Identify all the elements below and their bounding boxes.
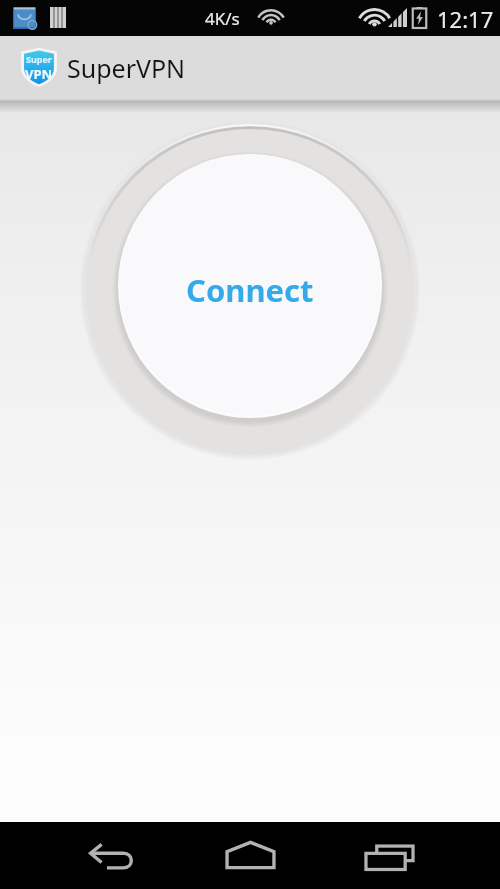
button[interactable]: Super xyxy=(0,36,500,99)
staticText: Connect xyxy=(186,269,314,311)
button[interactable]: Home xyxy=(184,822,316,889)
staticText: Super xyxy=(26,53,52,65)
button[interactable]: Connect xyxy=(83,122,417,456)
staticText: 12:17 xyxy=(437,4,494,34)
staticText: SuperVPN xyxy=(67,51,186,85)
staticText: VPN xyxy=(25,65,53,83)
button[interactable]: Recent apps xyxy=(323,822,455,889)
staticText: 4K/s xyxy=(205,7,240,30)
button[interactable]: Back xyxy=(45,822,177,889)
